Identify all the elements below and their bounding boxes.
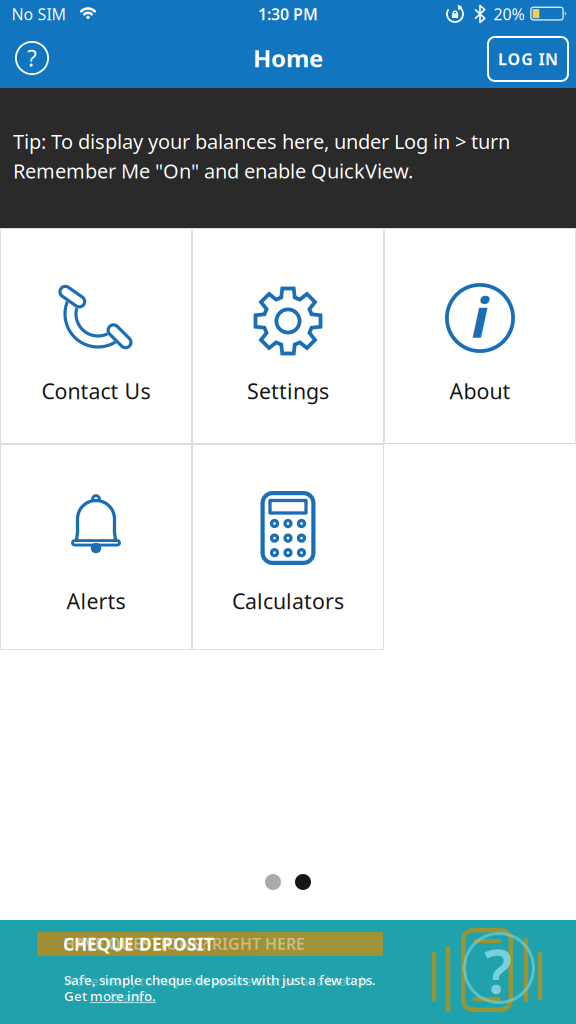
- staticText: branch.: [110, 988, 156, 1006]
- staticText: Tip: To display your balances here, unde…: [13, 128, 510, 184]
- button[interactable]: Calculators: [192, 444, 384, 650]
- staticText: i: [471, 279, 488, 353]
- staticText: Safe, simple cheque deposits with just a…: [64, 971, 376, 989]
- button[interactable]: Settings: [192, 228, 384, 444]
- staticText: ?: [27, 43, 37, 73]
- staticText: LOG IN: [498, 48, 558, 70]
- staticText: Settings: [247, 377, 329, 405]
- staticText: more info.: [90, 987, 156, 1005]
- button[interactable]: Alerts: [0, 444, 192, 650]
- staticText: Alerts: [66, 587, 125, 615]
- staticText: 20%: [493, 3, 524, 25]
- staticText: Contact Us: [41, 377, 150, 405]
- staticText: We're ready to help. Via secure chat or …: [64, 972, 372, 990]
- button[interactable]: Help: [15, 41, 49, 75]
- staticText: HAVE QUESTIONS? RIGHT HERE: [63, 933, 305, 954]
- button[interactable]: Contact Us: [0, 228, 192, 444]
- staticText: ?: [484, 929, 512, 1011]
- staticText: No SIM: [11, 3, 66, 25]
- staticText: Home: [253, 42, 323, 74]
- staticText: About: [449, 377, 510, 405]
- staticText: Calculators: [232, 587, 344, 615]
- staticText: CHEQUE DEPOSIT: [63, 932, 214, 955]
- button[interactable]: i: [384, 228, 576, 444]
- staticText: Get: [64, 987, 90, 1005]
- button[interactable]: LOG IN: [487, 36, 569, 82]
- button[interactable]: Cheque deposit — more info: [0, 920, 576, 1024]
- staticText: 1:30 PM: [258, 3, 318, 25]
